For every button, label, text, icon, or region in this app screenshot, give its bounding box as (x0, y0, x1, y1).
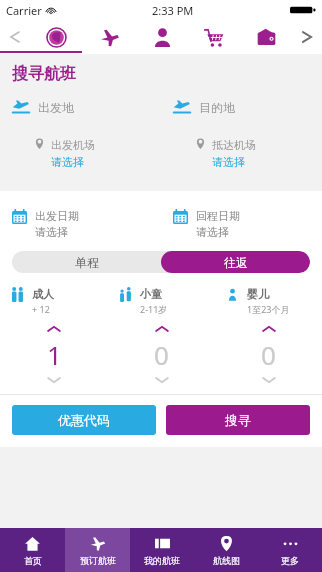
staticText: 小童 (140, 287, 162, 301)
staticText: 婴儿 (247, 287, 269, 301)
button[interactable]: 出发日期 (0, 209, 161, 239)
staticText: 请选择 (51, 155, 84, 169)
button[interactable]: 婴儿 (215, 287, 322, 315)
staticText: 2-11岁 (140, 303, 168, 315)
staticText: Carrier (6, 3, 42, 18)
button[interactable]: Decrease (142, 372, 182, 388)
staticText: 请选择 (196, 225, 229, 239)
button[interactable]: 我的航班 (130, 528, 194, 572)
staticText: 预订航班 (80, 555, 116, 566)
staticText: 抵达机场 (212, 138, 256, 152)
staticText: 1至23个月 (247, 303, 290, 315)
button[interactable]: Flights (83, 20, 136, 54)
button[interactable]: World (30, 20, 83, 54)
button[interactable]: Decrease (34, 372, 74, 388)
button[interactable]: 单程 (12, 251, 161, 273)
button[interactable]: 更多 (258, 528, 322, 572)
button[interactable]: Decrease (249, 372, 289, 388)
button[interactable]: Cart (188, 20, 240, 54)
button[interactable]: 预订航班 (65, 528, 130, 572)
button[interactable]: 出发机场 (0, 138, 161, 169)
staticText: 请选择 (212, 155, 245, 169)
staticText: 搜寻航班 (12, 64, 76, 84)
button[interactable]: 首页 (0, 528, 65, 572)
staticText: 1 (47, 337, 62, 372)
staticText: 单程 (75, 255, 99, 270)
button[interactable]: 抵达机场 (161, 138, 322, 169)
staticText: 出发机场 (51, 138, 95, 152)
button[interactable]: Back (0, 20, 30, 54)
button[interactable]: Increase (142, 321, 182, 337)
staticText: 成人 (32, 287, 54, 301)
staticText: 航线图 (213, 555, 240, 566)
button[interactable]: Forward (292, 20, 322, 54)
staticText: 2:33 PM (152, 3, 194, 18)
staticText: + 12 (32, 303, 50, 315)
button[interactable]: 优惠代码 (12, 405, 156, 435)
staticText: 目的地 (199, 100, 235, 115)
button[interactable]: Increase (34, 321, 74, 337)
staticText: 请选择 (35, 225, 68, 239)
staticText: 搜寻 (225, 412, 251, 428)
button[interactable]: 回程日期 (161, 209, 322, 239)
staticText: 0 (154, 337, 169, 372)
staticText: 出发日期 (35, 209, 79, 223)
button[interactable]: 成人 (0, 287, 108, 315)
staticText: 我的航班 (144, 555, 180, 566)
staticText: 0 (261, 337, 276, 372)
button[interactable]: 航线图 (194, 528, 258, 572)
button[interactable]: 出发地 (0, 98, 161, 116)
button[interactable]: 小童 (108, 287, 215, 315)
button[interactable]: 目的地 (161, 98, 322, 116)
button[interactable]: Increase (249, 321, 289, 337)
staticText: 出发地 (38, 100, 74, 115)
staticText: 回程日期 (196, 209, 240, 223)
button[interactable]: Profile (136, 20, 188, 54)
staticText: 首页 (24, 555, 42, 566)
button[interactable]: 搜寻 (166, 405, 310, 435)
button[interactable]: Wallet (240, 20, 292, 54)
button[interactable]: 往返 (161, 251, 310, 273)
staticText: 往返 (224, 255, 248, 270)
staticText: 优惠代码 (58, 412, 110, 428)
staticText: 更多 (281, 555, 299, 566)
